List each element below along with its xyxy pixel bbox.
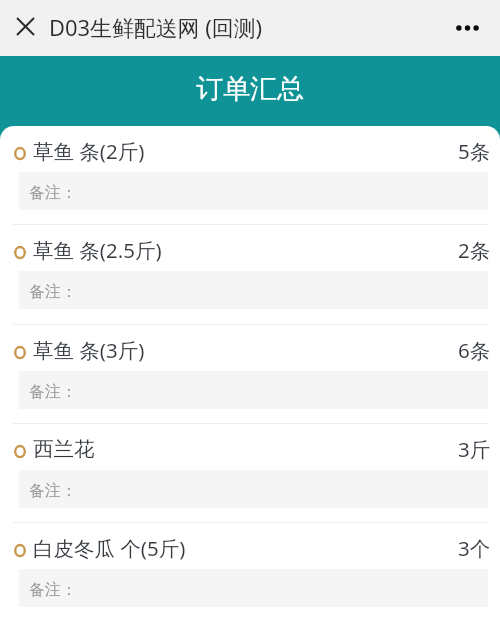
staticText: 备注：: [29, 183, 77, 203]
staticText: 备注：: [29, 580, 77, 600]
staticText: 订单汇总: [196, 72, 304, 106]
staticText: 3斤: [458, 435, 491, 463]
staticText: 备注：: [29, 481, 77, 501]
staticText: 5条: [458, 137, 491, 165]
staticText: 草鱼 条(3斤): [33, 336, 145, 364]
staticText: D03生鲜配送网 (回测): [49, 13, 263, 43]
staticText: 草鱼 条(2斤): [33, 137, 145, 165]
staticText: 备注：: [29, 282, 77, 302]
staticText: 备注：: [29, 382, 77, 402]
staticText: 2条: [458, 236, 491, 264]
staticText: 6条: [458, 336, 491, 364]
staticText: 白皮冬瓜 个(5斤): [33, 534, 186, 562]
staticText: 西兰花: [33, 436, 95, 462]
button[interactable]: More options: [443, 2, 491, 54]
button[interactable]: Close: [0, 0, 50, 52]
staticText: 草鱼 条(2.5斤): [33, 236, 162, 264]
staticText: 3个: [458, 534, 491, 562]
